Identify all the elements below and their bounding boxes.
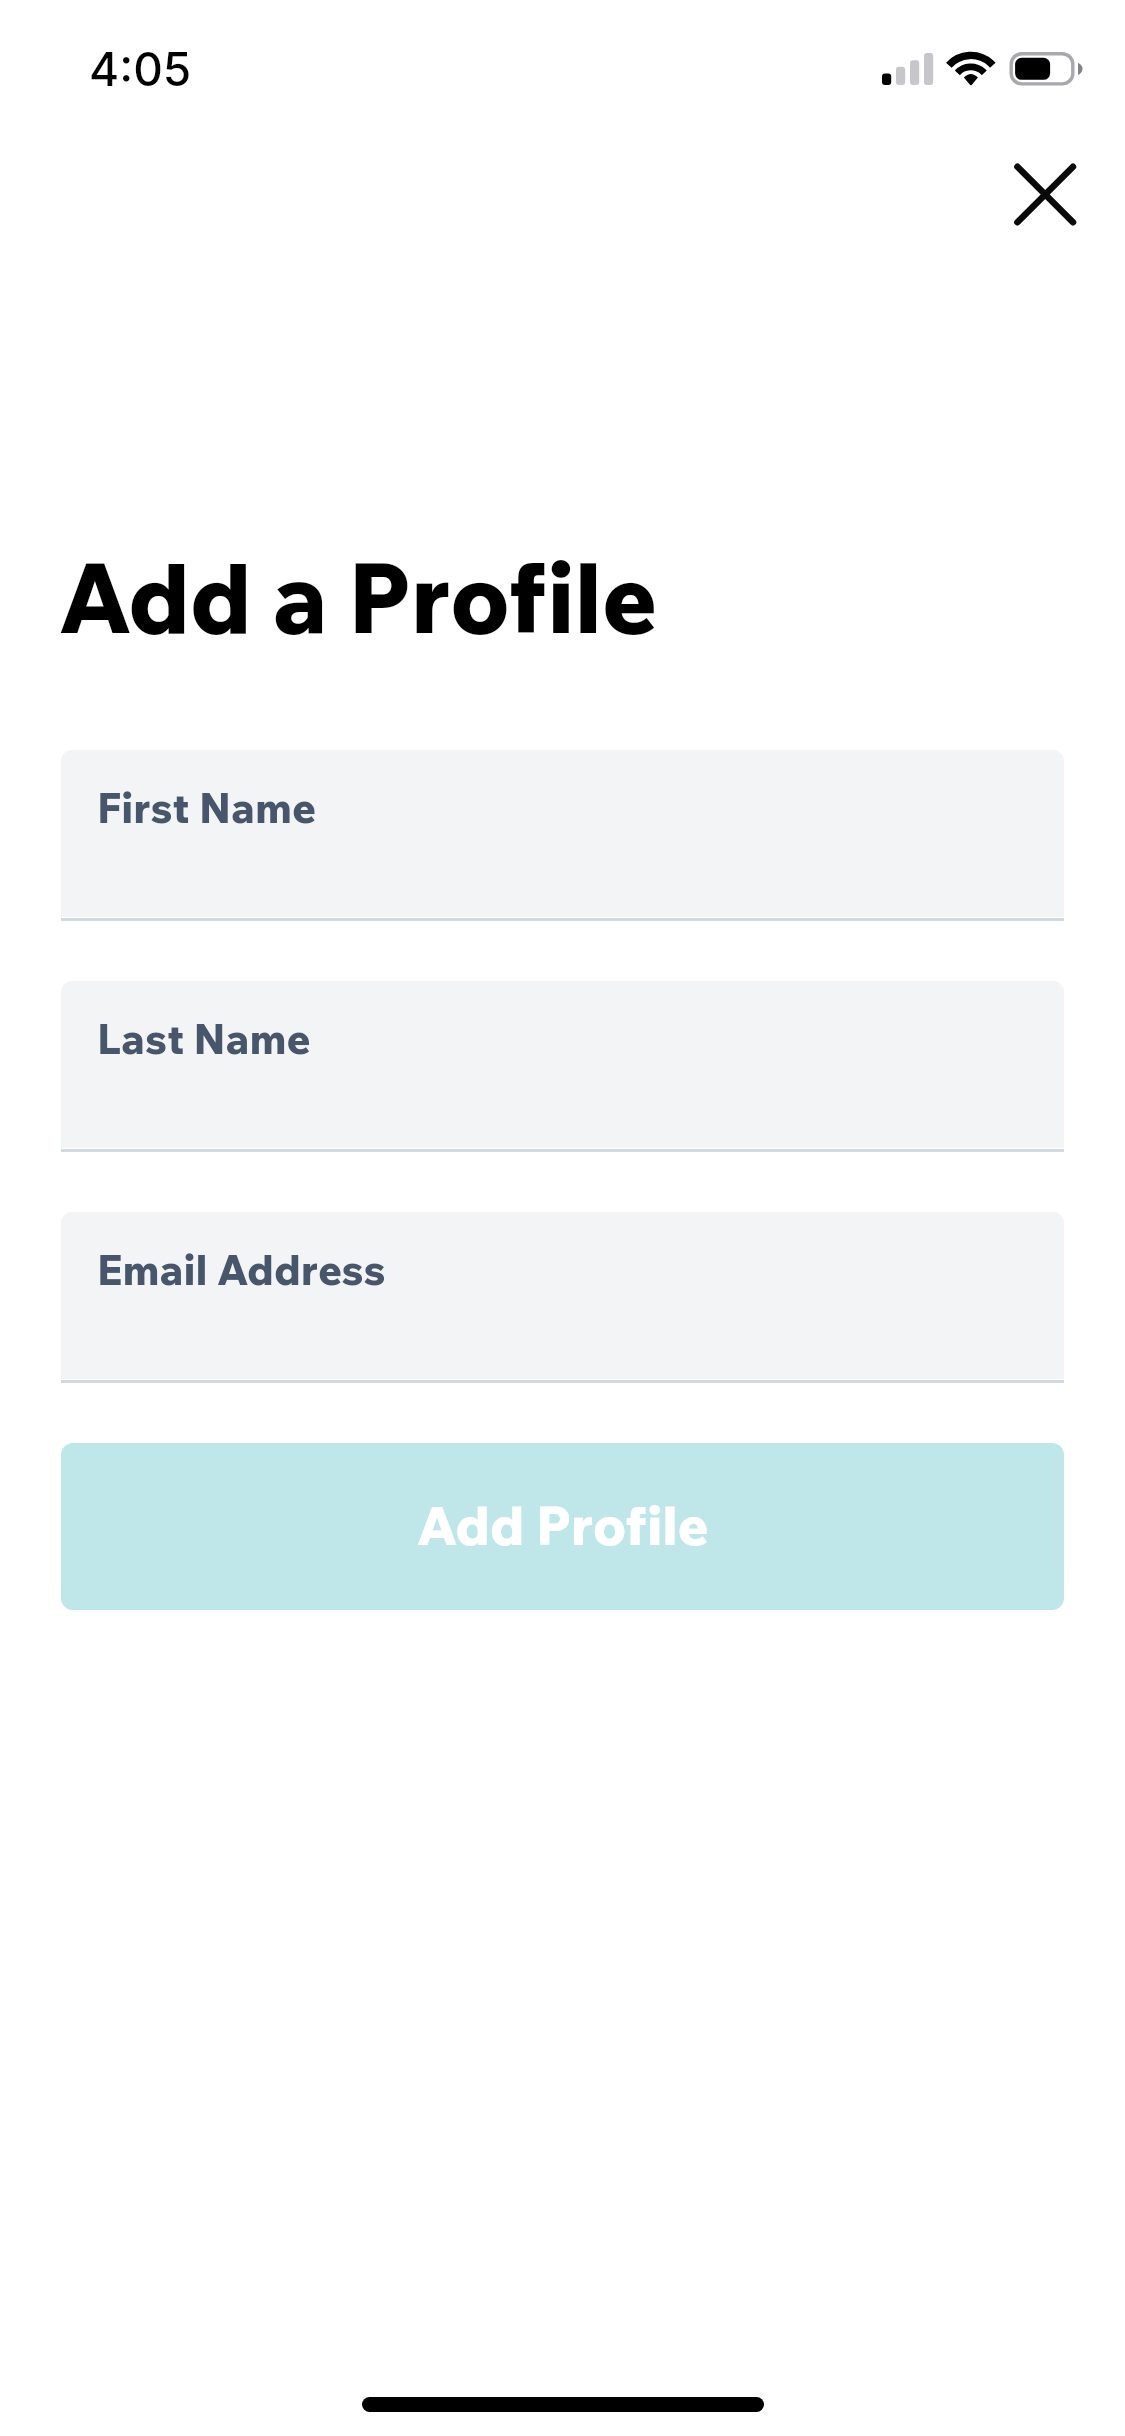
- staticText: Add a Profile: [58, 536, 658, 658]
- button[interactable]: Last Name: [61, 981, 1064, 1152]
- staticText: Last Name: [97, 1012, 311, 1064]
- button[interactable]: Close: [999, 148, 1092, 241]
- button[interactable]: Add Profile: [61, 1443, 1064, 1610]
- staticText: Add Profile: [416, 1491, 709, 1559]
- staticText: First Name: [97, 781, 317, 833]
- staticText: 4:05: [89, 41, 192, 97]
- button[interactable]: Email Address: [61, 1212, 1064, 1383]
- button[interactable]: First Name: [61, 750, 1064, 921]
- staticText: Email Address: [97, 1243, 386, 1295]
